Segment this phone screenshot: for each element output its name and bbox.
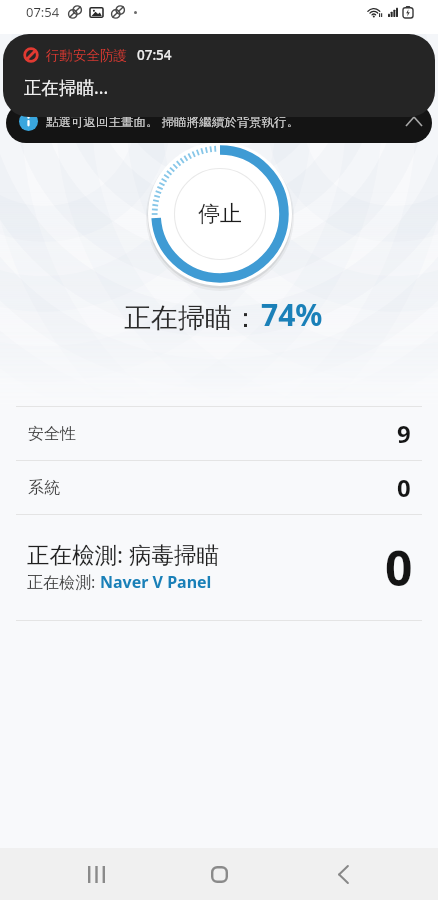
button[interactable]: Home (191, 848, 247, 900)
staticText: 行動安全防護 (46, 47, 127, 64)
staticText: 停止 (198, 200, 242, 228)
button[interactable]: 安全性 (0, 407, 438, 460)
staticText: 07:54 (137, 46, 172, 64)
button[interactable]: 正在檢測: 病毒掃瞄 (0, 515, 438, 620)
staticText: 9 (397, 417, 411, 450)
staticText: 74% (261, 294, 323, 335)
other: Collapse (406, 117, 422, 126)
button[interactable]: 系統 (0, 461, 438, 514)
staticText: 0 (397, 471, 411, 504)
button[interactable]: Recent apps (68, 848, 124, 900)
button[interactable]: Back (315, 848, 371, 900)
staticText: 正在檢測: (27, 571, 100, 593)
staticText: 系統 (28, 478, 60, 498)
staticText: Naver V Panel (100, 571, 212, 593)
button[interactable]: 點選可返回主畫面。 掃瞄將繼續於背景執行。 (6, 103, 432, 143)
staticText: 正在掃瞄... (24, 75, 109, 99)
staticText: 點選可返回主畫面。 掃瞄將繼續於背景執行。 (46, 113, 300, 130)
staticText: 07:54 (26, 3, 60, 21)
button[interactable]: 停止 (177, 171, 263, 257)
staticText: 0 (385, 535, 413, 600)
staticText: 正在檢測: 病毒掃瞄 (27, 539, 219, 570)
button[interactable]: 行動安全防護 (3, 34, 435, 117)
staticText: 安全性 (28, 424, 76, 444)
staticText: 正在掃瞄： (124, 301, 259, 335)
